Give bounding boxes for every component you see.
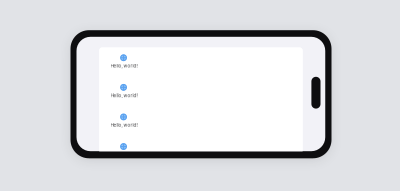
staticText: Hello, world! (110, 63, 137, 69)
button[interactable]: Hello, world! (99, 107, 303, 136)
button[interactable]: Hello, world! (99, 77, 303, 107)
button[interactable]: Hello, world! (99, 47, 303, 77)
staticText: Hello, world! (110, 122, 137, 128)
button[interactable]: Hello, world! (99, 136, 303, 166)
staticText: Hello, world! (110, 93, 137, 98)
